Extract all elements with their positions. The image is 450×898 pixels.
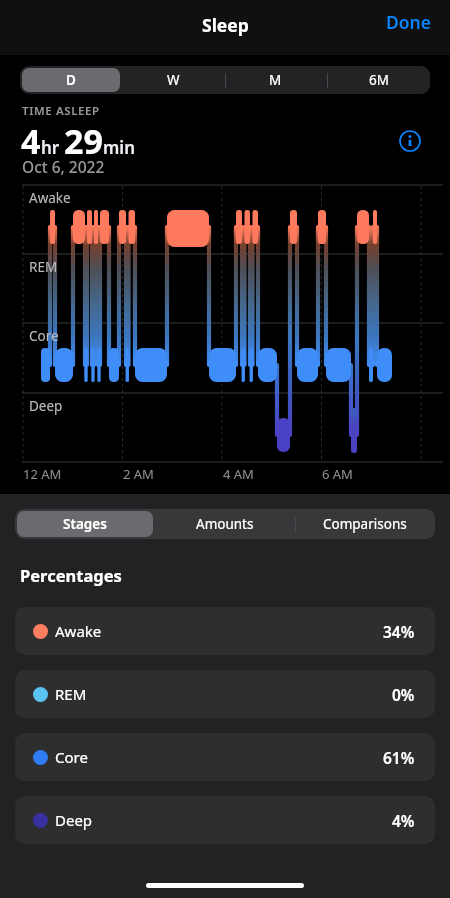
staticText: Amounts <box>196 515 254 533</box>
staticText: 4 AM <box>223 465 254 483</box>
staticText: 2 AM <box>123 465 154 483</box>
button[interactable]: 6M <box>329 68 428 92</box>
staticText: 0% <box>392 684 415 705</box>
staticText: Comparisons <box>323 515 407 533</box>
staticText: 34% <box>383 621 415 642</box>
button[interactable]: Comparisons <box>297 511 433 537</box>
staticText: Percentages <box>20 564 122 586</box>
staticText: 61% <box>383 747 415 768</box>
staticText: Sleep <box>202 13 249 37</box>
button[interactable]: Deep <box>15 796 435 844</box>
staticText: 4% <box>392 810 415 831</box>
button[interactable]: W <box>124 68 222 92</box>
staticText: hr <box>41 136 64 159</box>
button[interactable]: Done <box>381 9 437 35</box>
staticText: TIME ASLEEP <box>22 103 100 119</box>
staticText: min <box>103 136 135 159</box>
staticText: 12 AM <box>23 465 62 483</box>
staticText: 6M <box>369 71 389 89</box>
staticText: REM <box>29 258 58 276</box>
button[interactable]: Awake <box>15 607 435 655</box>
button[interactable]: M <box>226 68 325 92</box>
button[interactable]: Stages <box>17 511 153 537</box>
staticText: Deep <box>29 397 63 415</box>
staticText: Core <box>29 327 59 345</box>
staticText: REM <box>55 684 87 704</box>
button[interactable]: Amounts <box>157 511 293 537</box>
button[interactable]: D <box>22 68 120 92</box>
staticText: Core <box>55 747 88 767</box>
staticText: W <box>167 71 180 89</box>
staticText: Awake <box>29 189 71 207</box>
staticText: M <box>269 71 282 89</box>
button[interactable] <box>398 129 422 153</box>
staticText: Oct 6, 2022 <box>22 156 105 177</box>
staticText: 4 <box>21 118 41 164</box>
staticText: Done <box>386 10 432 34</box>
staticText: 29 <box>64 118 103 164</box>
staticText: D <box>66 71 76 89</box>
staticText: 6 AM <box>322 465 353 483</box>
button[interactable]: Core <box>15 733 435 781</box>
staticText: Awake <box>55 621 102 641</box>
staticText: Stages <box>63 515 107 533</box>
button[interactable]: REM <box>15 670 435 718</box>
staticText: Deep <box>55 810 93 830</box>
